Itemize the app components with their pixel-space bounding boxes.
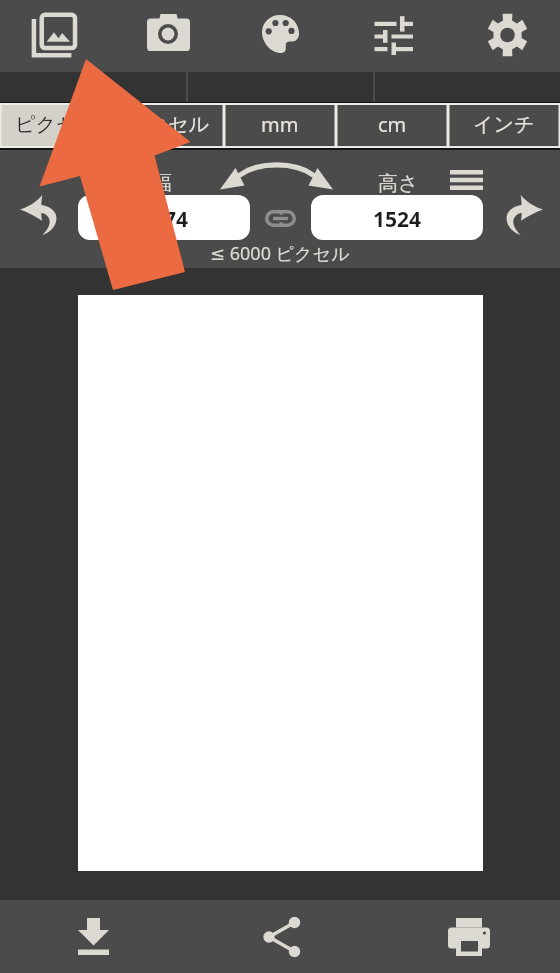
button[interactable]: Share <box>186 900 373 973</box>
staticText: ピクセル <box>127 112 209 137</box>
button[interactable]: Print <box>373 900 560 973</box>
staticText: インチ <box>473 112 535 137</box>
staticText: mm <box>261 111 299 138</box>
button[interactable]: Link aspect ratio <box>258 202 302 234</box>
button[interactable]: Gallery <box>0 0 112 72</box>
staticText: 1524 <box>373 205 422 234</box>
button[interactable]: Camera <box>112 0 224 72</box>
staticText: cm <box>378 111 407 138</box>
button[interactable]: Save <box>0 900 186 973</box>
button[interactable]: Adjust <box>336 0 448 72</box>
staticText: ≤ 6000 ピクセル <box>210 241 350 266</box>
staticText: 1074 <box>140 205 189 234</box>
button[interactable]: Undo <box>10 191 66 239</box>
button[interactable]: ピクセル <box>112 103 224 150</box>
staticText: 高さ <box>378 171 419 196</box>
button[interactable]: cm <box>336 103 448 150</box>
staticText: 幅 <box>152 171 172 196</box>
button[interactable]: mm <box>224 103 336 150</box>
button[interactable]: ピクセル <box>0 103 112 150</box>
button[interactable]: 1074 <box>78 195 250 240</box>
button[interactable]: Redo <box>496 191 552 239</box>
button[interactable]: Menu <box>443 161 489 199</box>
button[interactable]: Palette <box>224 0 336 72</box>
staticText: ピクセル <box>15 112 97 137</box>
button[interactable]: インチ <box>448 103 560 150</box>
button[interactable]: Settings <box>448 0 560 72</box>
button[interactable]: 1524 <box>311 195 483 240</box>
